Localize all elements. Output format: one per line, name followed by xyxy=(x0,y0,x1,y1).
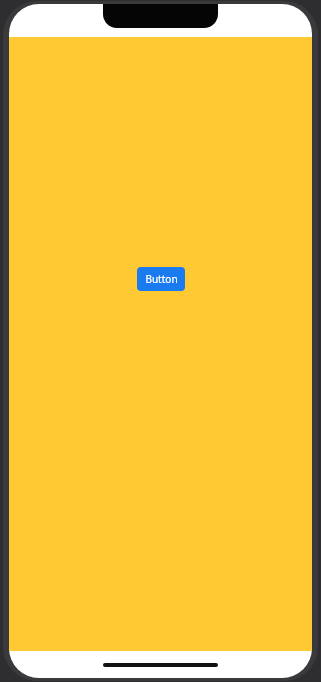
staticText: Button xyxy=(145,272,178,286)
button[interactable]: Button xyxy=(137,267,185,291)
